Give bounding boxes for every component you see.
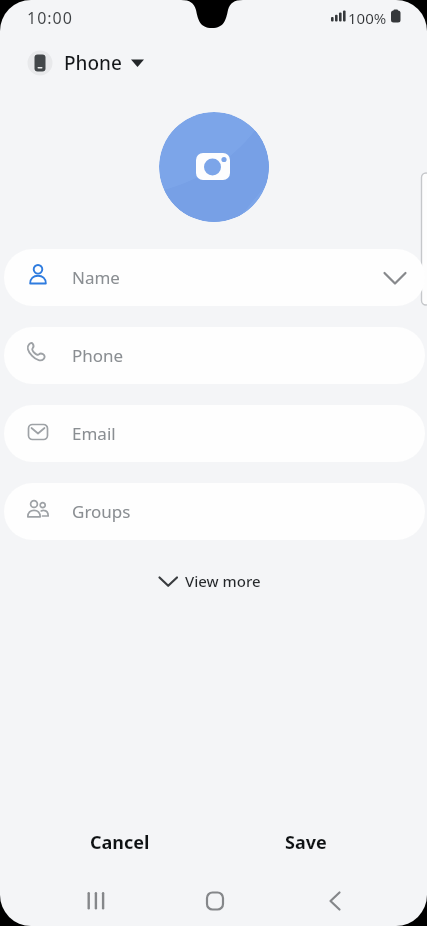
staticText: Phone (72, 344, 124, 367)
button[interactable]: Phone (20, 44, 150, 82)
button[interactable] (159, 112, 269, 222)
staticText: Name (72, 266, 120, 289)
staticText: 10:00 (27, 7, 73, 29)
button[interactable]: Cancel (55, 823, 185, 861)
staticText: Cancel (90, 830, 150, 855)
staticText: Email (72, 422, 116, 445)
button[interactable] (195, 880, 235, 920)
button[interactable] (315, 880, 355, 920)
button[interactable]: View more (150, 563, 277, 599)
button[interactable]: Name (4, 249, 425, 306)
button[interactable]: Save (241, 823, 371, 861)
button[interactable]: Phone (4, 327, 425, 384)
staticText: Save (285, 830, 327, 855)
staticText: Groups (72, 500, 131, 523)
button[interactable]: Groups (4, 483, 425, 540)
button[interactable] (76, 880, 116, 920)
staticText: View more (185, 571, 261, 591)
button[interactable]: Email (4, 405, 425, 462)
staticText: Phone (64, 50, 122, 76)
staticText: 100% (348, 8, 387, 28)
